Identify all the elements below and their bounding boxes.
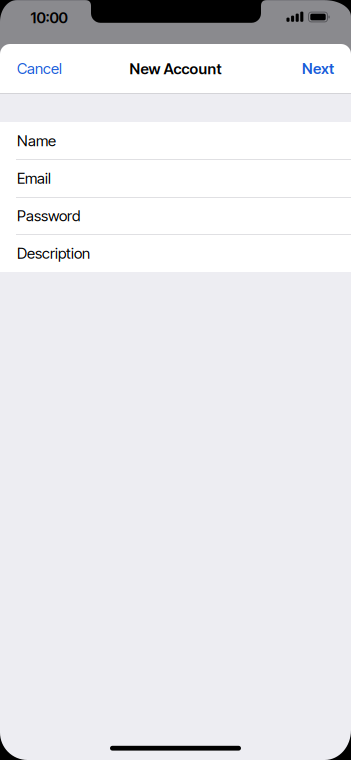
staticText: Email — [17, 169, 51, 187]
button[interactable]: Password — [0, 197, 351, 234]
staticText: Description — [17, 244, 90, 262]
button[interactable]: Description — [0, 234, 351, 272]
button[interactable]: Name — [0, 122, 351, 159]
button[interactable]: Next — [302, 59, 334, 77]
staticText: 10:00 — [30, 9, 67, 27]
staticText: Next — [302, 59, 334, 77]
staticText: Cancel — [17, 59, 62, 77]
staticText: Password — [17, 207, 80, 225]
button[interactable]: Cancel — [17, 59, 62, 77]
button[interactable]: Email — [0, 159, 351, 197]
staticText: Name — [17, 132, 56, 150]
staticText: New Account — [129, 60, 221, 78]
